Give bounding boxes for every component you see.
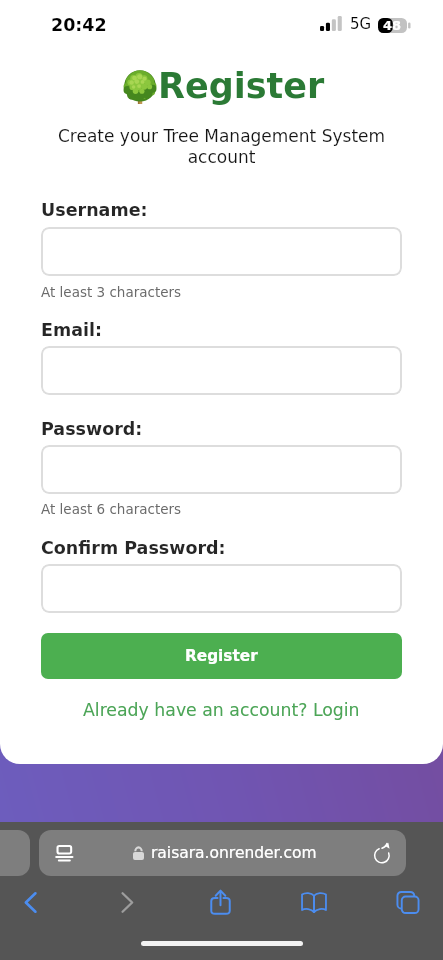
staticText: Register <box>158 66 325 107</box>
button[interactable] <box>41 346 402 395</box>
other: Reload <box>372 843 393 864</box>
staticText: Create your Tree Management System accou… <box>54 126 389 167</box>
button[interactable]: Back <box>4 880 56 924</box>
staticText: Email: <box>41 320 102 340</box>
button[interactable] <box>41 445 402 494</box>
staticText: At least 3 characters <box>41 284 182 300</box>
button[interactable]: Already have an account? Login <box>83 700 360 720</box>
button[interactable]: Tabs <box>382 880 434 924</box>
button[interactable]: Share <box>194 880 246 924</box>
staticText: 48 <box>383 18 402 33</box>
staticText: At least 6 characters <box>41 501 182 517</box>
button[interactable]: Forward <box>101 880 153 924</box>
staticText: Password: <box>41 419 143 439</box>
button[interactable]: Register <box>41 633 402 679</box>
button[interactable]: Bookmarks <box>288 880 340 924</box>
staticText: 20:42 <box>51 15 107 35</box>
staticText: raisara.onrender.com <box>151 844 317 862</box>
button[interactable] <box>41 564 402 613</box>
staticText: 5G <box>350 15 372 32</box>
button[interactable]: Page settings <box>39 830 406 876</box>
staticText: Register <box>185 647 258 665</box>
staticText: Confirm Password: <box>41 538 226 558</box>
other: Page settings <box>54 842 76 864</box>
staticText: Username: <box>41 200 148 220</box>
button[interactable] <box>41 227 402 276</box>
